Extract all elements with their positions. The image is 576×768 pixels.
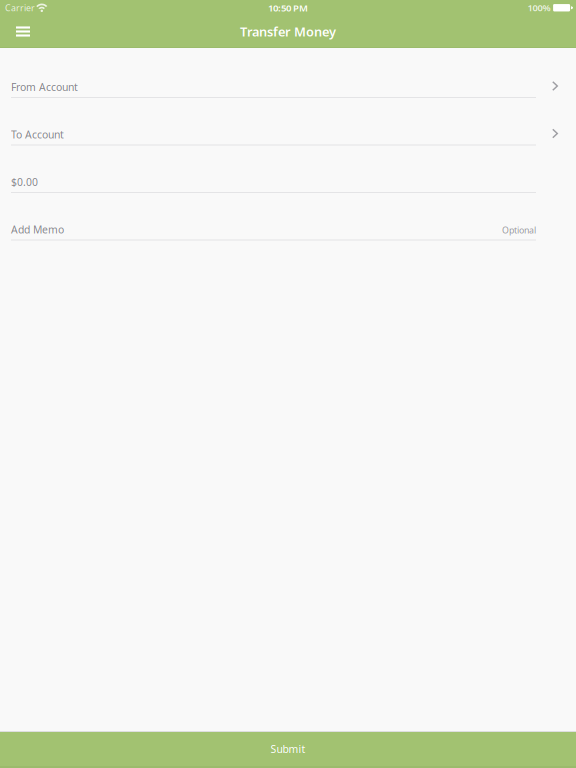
button[interactable]: $0.00: [0, 145, 576, 193]
staticText: From Account: [11, 80, 78, 94]
staticText: 100%: [527, 1, 550, 14]
staticText: Carrier: [5, 2, 35, 14]
button[interactable]: Add Memo: [0, 193, 576, 240]
staticText: 10:50 PM: [268, 1, 308, 14]
button[interactable]: Menu: [0, 21, 44, 42]
button[interactable]: To Account: [0, 98, 576, 145]
button[interactable]: From Account: [0, 50, 576, 98]
staticText: Transfer Money: [240, 23, 336, 40]
staticText: To Account: [11, 127, 64, 141]
staticText: Submit: [270, 742, 305, 756]
staticText: $0.00: [11, 175, 38, 189]
staticText: Optional: [502, 224, 536, 236]
button[interactable]: Submit: [0, 732, 576, 768]
staticText: Add Memo: [11, 222, 64, 236]
